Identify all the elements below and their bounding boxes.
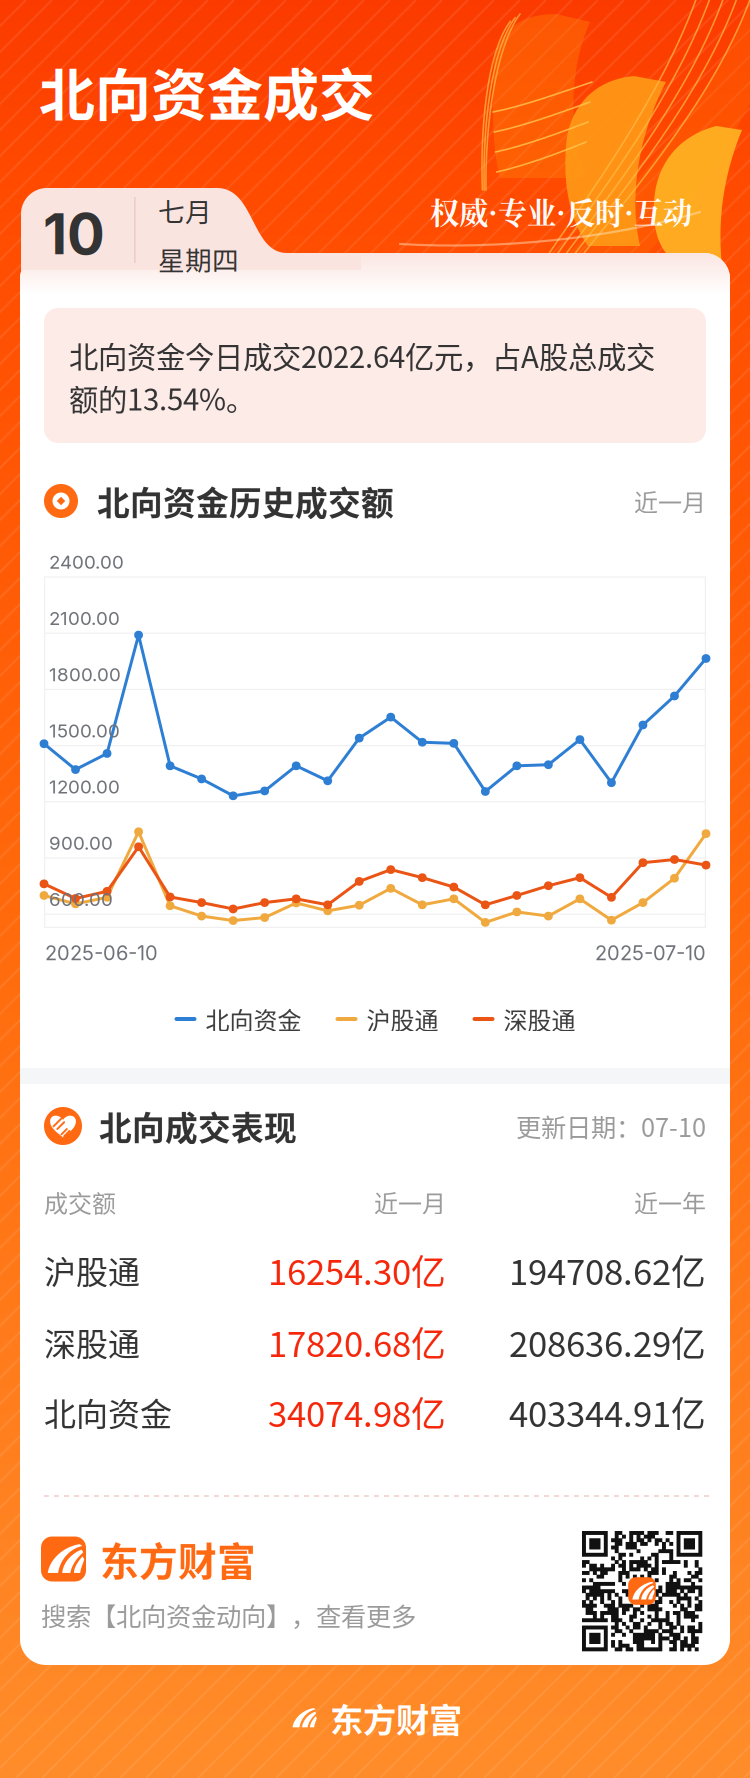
staticText: 16254.30亿 bbox=[268, 1245, 446, 1295]
staticText: 成交额 bbox=[44, 1185, 116, 1219]
staticText: 北向成交表现 bbox=[99, 1102, 297, 1150]
staticText: 深股通 bbox=[503, 1002, 575, 1036]
staticText: 搜索【北向资金动向】，查看更多 bbox=[41, 1597, 416, 1633]
staticText: 近一月 bbox=[374, 1185, 446, 1219]
staticText: 403344.91亿 bbox=[509, 1387, 706, 1437]
staticText: 10 bbox=[43, 200, 105, 268]
staticText: 1500.00 bbox=[49, 719, 120, 742]
staticText: 七月 bbox=[158, 191, 212, 230]
staticText: 北向资金 bbox=[44, 1389, 172, 1435]
staticText: 更新日期：07-10 bbox=[516, 1108, 706, 1144]
staticText: 2100.00 bbox=[49, 607, 120, 629]
staticText: 1800.00 bbox=[49, 663, 121, 686]
staticText: 东方财富 bbox=[100, 1531, 256, 1587]
staticText: 2400.00 bbox=[49, 551, 124, 573]
staticText: 34074.98亿 bbox=[268, 1387, 446, 1437]
staticText: 600.00 bbox=[49, 888, 113, 910]
staticText: 沪股通 bbox=[366, 1002, 438, 1036]
staticText: 北向资金历史成交额 bbox=[97, 477, 394, 525]
staticText: 900.00 bbox=[49, 832, 113, 854]
staticText: 权威·专业·反时·互动 bbox=[430, 190, 692, 232]
staticText: 近一年 bbox=[634, 1185, 706, 1219]
staticText: 东方财富 bbox=[330, 1694, 462, 1742]
staticText: 208636.29亿 bbox=[509, 1317, 706, 1367]
staticText: 沪股通 bbox=[44, 1247, 140, 1293]
staticText: 北向资金 bbox=[205, 1002, 301, 1036]
staticText: 194708.62亿 bbox=[509, 1245, 706, 1295]
staticText: 北向资金成交 bbox=[39, 50, 375, 132]
staticText: 2025-07-10 bbox=[595, 941, 706, 965]
staticText: 星期四 bbox=[158, 240, 239, 278]
staticText: 深股通 bbox=[44, 1319, 140, 1365]
staticText: 北向资金今日成交2022.64亿元，占A股总成交额的13.54%。 bbox=[69, 334, 655, 419]
staticText: 近一月 bbox=[634, 484, 706, 518]
staticText: 2025-06-10 bbox=[45, 941, 158, 965]
staticText: 1200.00 bbox=[49, 775, 120, 798]
staticText: 17820.68亿 bbox=[268, 1317, 446, 1367]
